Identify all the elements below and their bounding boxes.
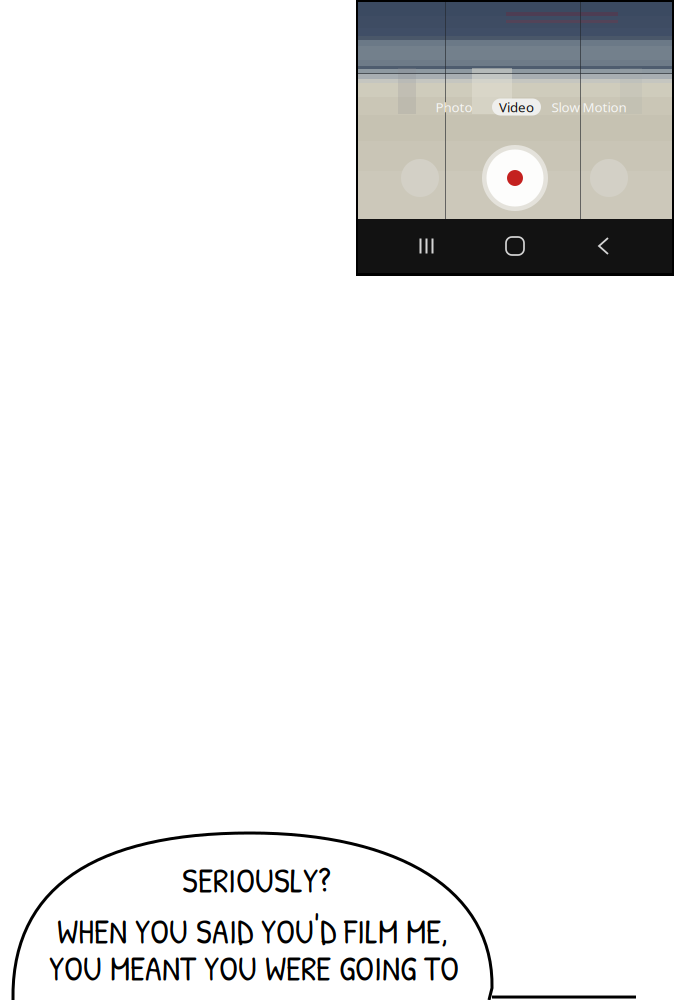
button[interactable]: Switch camera bbox=[590, 159, 628, 197]
button[interactable]: Video bbox=[492, 98, 541, 115]
button[interactable]: Slow Motion bbox=[552, 97, 626, 117]
staticText: YOU MEANT YOU WERE GOING TO bbox=[49, 945, 459, 991]
staticText: Video bbox=[499, 98, 534, 116]
staticText: Slow Motion bbox=[551, 98, 626, 116]
button[interactable]: Record bbox=[482, 145, 548, 211]
button[interactable]: Gallery bbox=[401, 159, 439, 197]
button[interactable]: Back bbox=[583, 231, 623, 261]
staticText: Photo bbox=[435, 98, 472, 116]
button[interactable]: Recents bbox=[406, 231, 446, 261]
button[interactable]: Home bbox=[495, 231, 535, 261]
button[interactable]: Photo bbox=[429, 97, 479, 117]
staticText: WHEN YOU SAID YOU'D FILM ME, bbox=[57, 908, 448, 954]
staticText: SERIOUSLY? bbox=[182, 857, 331, 903]
